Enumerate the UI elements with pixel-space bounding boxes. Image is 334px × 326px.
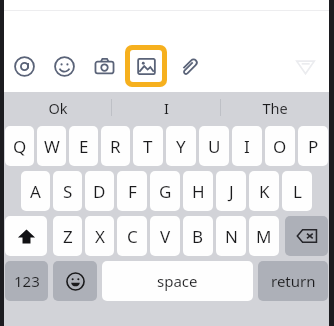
staticText: T — [143, 135, 153, 158]
button[interactable]: N — [216, 216, 246, 256]
button[interactable]: E — [69, 126, 98, 166]
other: Emoji — [54, 56, 75, 77]
button[interactable]: I — [232, 126, 262, 166]
button[interactable]: Ok — [4, 92, 111, 123]
staticText: I — [244, 135, 250, 158]
staticText: Z — [63, 225, 73, 248]
staticText: P — [308, 135, 319, 158]
button[interactable]: U — [199, 126, 229, 166]
staticText: space — [157, 271, 198, 291]
staticText: F — [128, 180, 137, 203]
staticText: Q — [13, 135, 27, 158]
staticText: I — [164, 98, 169, 118]
staticText: W — [44, 135, 60, 158]
button[interactable]: Z — [53, 216, 82, 256]
button[interactable]: G — [150, 171, 180, 211]
staticText: R — [110, 135, 121, 158]
button[interactable]: M — [249, 216, 279, 256]
button[interactable]: The — [221, 92, 329, 123]
button[interactable]: H — [183, 171, 213, 211]
button[interactable]: Q — [5, 126, 34, 166]
button[interactable]: T — [133, 126, 163, 166]
button[interactable]: J — [216, 171, 246, 211]
staticText: G — [159, 180, 172, 203]
button[interactable]: A — [21, 171, 50, 211]
button[interactable]: F — [117, 171, 147, 211]
staticText: N — [225, 225, 238, 248]
staticText: return — [271, 271, 316, 291]
staticText: M — [256, 225, 272, 248]
button[interactable]: Mention — [4, 46, 44, 86]
button[interactable]: Y — [166, 126, 196, 166]
staticText: D — [93, 180, 106, 203]
staticText: B — [192, 225, 204, 248]
button[interactable]: S — [53, 171, 82, 211]
staticText: The — [262, 98, 288, 118]
button[interactable]: R — [101, 126, 130, 166]
staticText: Y — [176, 135, 186, 158]
staticText: J — [229, 180, 234, 203]
button[interactable]: V — [150, 216, 180, 256]
button[interactable]: Shift — [5, 216, 47, 256]
staticText: 123 — [14, 271, 40, 291]
staticText: U — [208, 135, 221, 158]
button[interactable]: W — [37, 126, 66, 166]
button[interactable]: Send — [285, 46, 325, 86]
other: Mention — [14, 56, 35, 77]
staticText: V — [160, 225, 171, 248]
staticText: A — [30, 180, 41, 203]
staticText: K — [259, 180, 270, 203]
button[interactable]: P — [298, 126, 328, 166]
staticText: E — [79, 135, 89, 158]
other: Camera — [94, 56, 115, 77]
button[interactable]: K — [249, 171, 279, 211]
staticText: H — [192, 180, 205, 203]
staticText: O — [273, 135, 287, 158]
staticText: X — [95, 225, 105, 248]
button[interactable]: L — [282, 171, 312, 211]
button[interactable]: space — [102, 261, 253, 301]
staticText: S — [63, 180, 73, 203]
button[interactable]: C — [117, 216, 147, 256]
button[interactable]: 123 — [5, 261, 48, 301]
button[interactable]: Backspace — [285, 216, 328, 256]
staticText: L — [293, 180, 302, 203]
button[interactable]: Emoji — [44, 46, 84, 86]
button[interactable]: X — [85, 216, 114, 256]
button[interactable]: I — [112, 92, 220, 123]
button[interactable]: D — [85, 171, 114, 211]
button[interactable]: B — [183, 216, 213, 256]
button[interactable]: return — [258, 261, 328, 301]
staticText: Ok — [48, 98, 68, 118]
button[interactable]: Camera — [84, 46, 124, 86]
button[interactable]: Attach file — [168, 46, 208, 86]
staticText: C — [127, 225, 138, 248]
button[interactable]: O — [265, 126, 295, 166]
button[interactable]: Emoji keyboard — [53, 261, 97, 301]
button[interactable]: Insert image — [124, 44, 168, 88]
other: Attach file — [178, 56, 199, 77]
